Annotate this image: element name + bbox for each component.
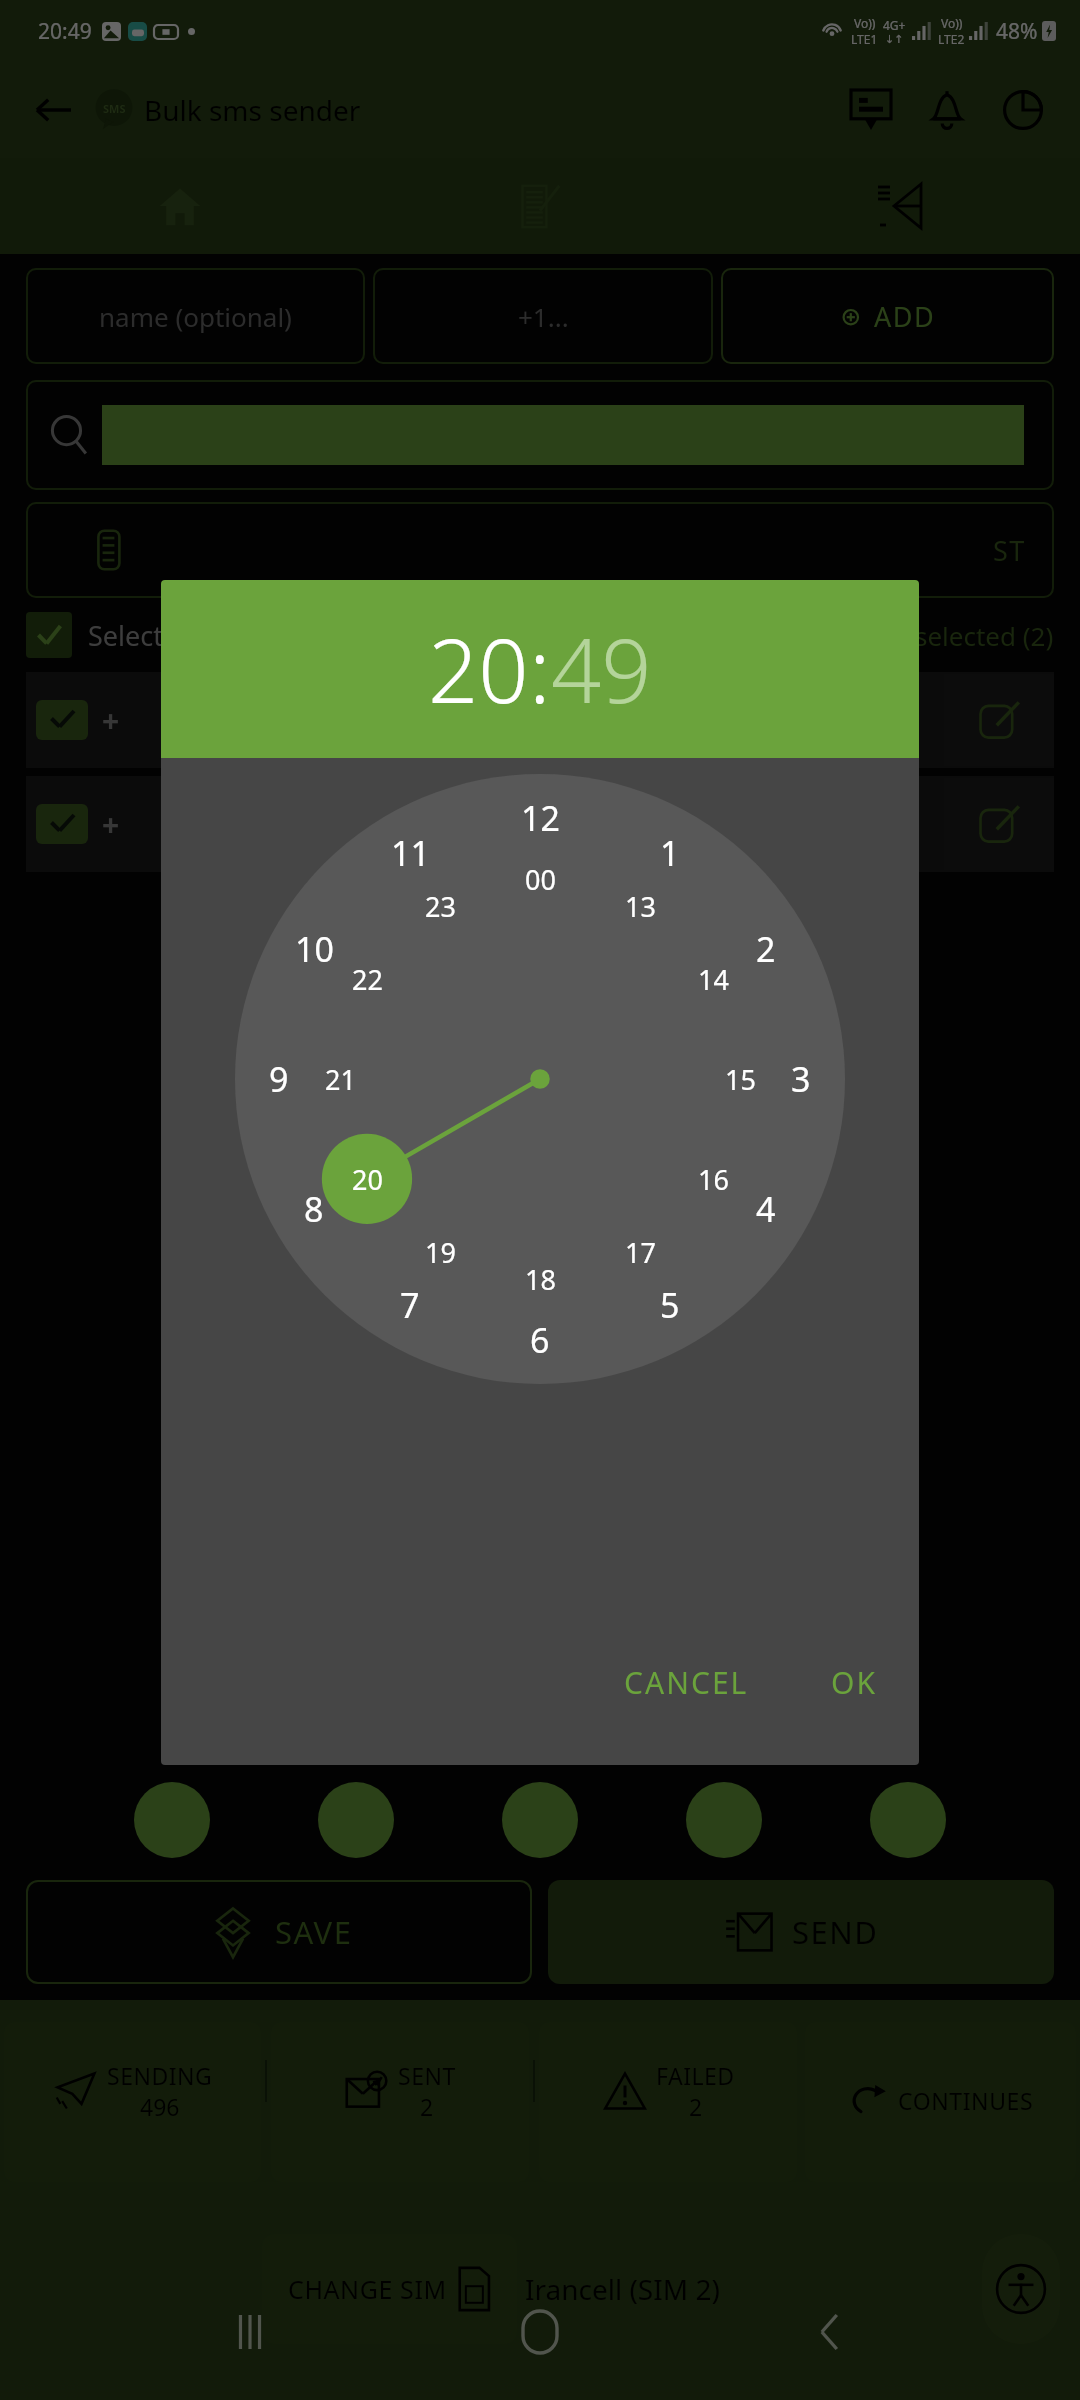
staticText: 15 [725, 1061, 756, 1098]
staticText: SENT [398, 2060, 456, 2091]
button[interactable]: Edit [944, 778, 1054, 870]
button[interactable]: FAILED [539, 2022, 797, 2182]
staticText: 7 [400, 1282, 420, 1328]
button[interactable]: CANCEL [600, 1648, 773, 1717]
staticText: selected (2) [915, 618, 1054, 653]
button[interactable]: SEND [548, 1880, 1054, 1984]
staticText: 14 [698, 961, 729, 998]
staticText: 20:49 [38, 17, 92, 46]
staticText: 2 [689, 2091, 703, 2122]
button[interactable]: + [26, 776, 1054, 872]
staticText: CONTINUES [898, 2085, 1034, 2116]
button[interactable]: Messages [840, 79, 902, 141]
staticText: ↓↑ [885, 33, 904, 46]
button[interactable]: Edit [944, 674, 1054, 766]
staticText: 5 [660, 1282, 680, 1328]
button[interactable] [26, 612, 72, 658]
button[interactable]: Accessibility [982, 2234, 1060, 2344]
staticText: Select all [88, 617, 200, 654]
staticText: 3 [791, 1056, 811, 1102]
staticText: 496 [140, 2091, 180, 2122]
staticText: 23 [425, 888, 456, 925]
button[interactable]: + [26, 672, 1054, 768]
staticText: name (optional) [99, 299, 292, 334]
staticText: 48% [996, 17, 1038, 46]
staticText: 17 [625, 1234, 656, 1271]
staticText: 1 [660, 830, 680, 876]
other: Search [48, 413, 92, 457]
button[interactable]: SAVE [26, 1880, 532, 1984]
staticText: : [529, 609, 551, 729]
button[interactable]: ADD [721, 268, 1054, 364]
button[interactable] [502, 1782, 578, 1858]
staticText: ST [993, 532, 1026, 569]
button[interactable]: Back [26, 82, 82, 138]
staticText: LTE1 [851, 31, 878, 47]
button[interactable]: 20 [428, 609, 529, 729]
staticText: CHANGE SIM [288, 2272, 447, 2306]
staticText: 18 [525, 1261, 556, 1298]
button[interactable]: Home [500, 2292, 580, 2372]
staticText: 20 [352, 1161, 383, 1198]
staticText: Vo)) [941, 15, 963, 31]
staticText: 19 [425, 1234, 456, 1271]
staticText: SAVE [275, 1911, 353, 1953]
button[interactable]: SENDING [4, 2022, 261, 2182]
staticText: 2 [756, 926, 776, 972]
staticText: + [102, 700, 120, 741]
button[interactable]: Search [26, 380, 1054, 490]
staticText: 4G+ [883, 17, 906, 33]
staticText: 49 [551, 609, 652, 729]
button[interactable]: Statistics [992, 79, 1054, 141]
staticText: 9 [269, 1056, 289, 1102]
staticText: 21 [325, 1061, 356, 1098]
staticText: LTE2 [938, 31, 965, 47]
button[interactable]: +1... [373, 268, 713, 364]
button[interactable]: SENT [271, 2022, 529, 2182]
button[interactable]: OK [807, 1648, 901, 1717]
button[interactable]: CHANGE SIM [262, 2234, 517, 2344]
staticText: Irancell (SIM 2) [525, 2270, 720, 2308]
staticText: 10 [295, 926, 334, 972]
button[interactable]: Recents [210, 2292, 290, 2372]
staticText: + [102, 804, 120, 845]
staticText: 6 [530, 1317, 550, 1363]
button[interactable] [134, 1782, 210, 1858]
staticText: +1... [518, 299, 569, 334]
staticText: SEND [792, 1911, 879, 1953]
staticText: 00 [525, 861, 556, 898]
staticText: ADD [874, 298, 936, 335]
staticText: Vo)) [854, 15, 876, 31]
button[interactable] [870, 1782, 946, 1858]
staticText: Bulk sms sender [144, 91, 361, 129]
button[interactable]: name (optional) [26, 268, 365, 364]
staticText: CANCEL [624, 1662, 749, 1703]
staticText: 8 [304, 1186, 324, 1232]
button[interactable]: 49 [551, 609, 652, 729]
button[interactable]: Back [790, 2292, 870, 2372]
button[interactable]: ST [26, 502, 1054, 598]
button[interactable] [686, 1782, 762, 1858]
staticText: 20 [428, 609, 529, 729]
button[interactable]: Notifications [916, 79, 978, 141]
button[interactable] [318, 1782, 394, 1858]
staticText: FAILED [656, 2060, 735, 2091]
staticText: 22 [352, 961, 383, 998]
staticText: 2 [420, 2091, 434, 2122]
staticText: SMS [103, 101, 126, 116]
staticText: 4 [756, 1186, 776, 1232]
staticText: SENDING [107, 2060, 213, 2091]
staticText: 13 [625, 888, 656, 925]
staticText: 12 [521, 795, 560, 841]
button[interactable]: CONTINUES [805, 2022, 1076, 2182]
staticText: 16 [698, 1161, 729, 1198]
staticText: OK [831, 1662, 877, 1703]
staticText: 11 [391, 830, 430, 876]
